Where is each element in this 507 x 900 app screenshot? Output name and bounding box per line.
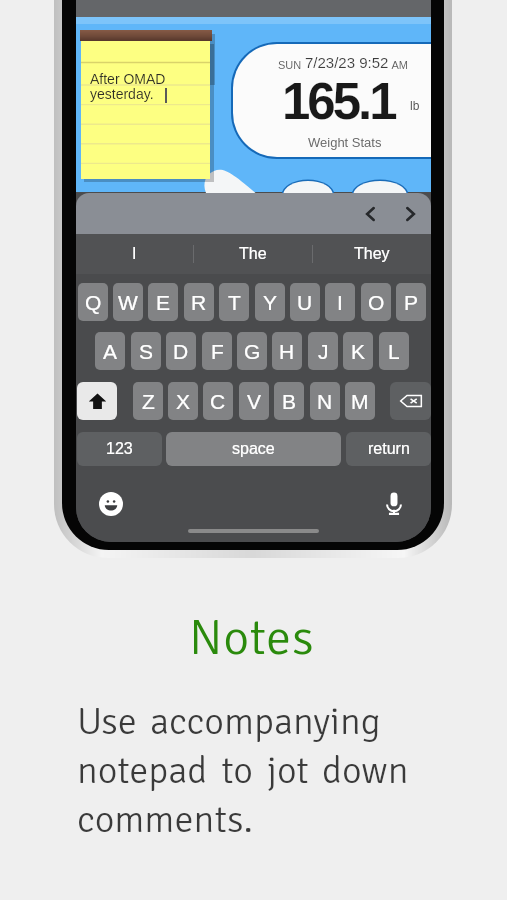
staticText: X [176,390,191,413]
button[interactable]: P [396,283,426,321]
staticText: SUN [278,59,305,71]
button[interactable]: T [219,283,249,321]
staticText: G [244,340,261,363]
button[interactable]: Backspace [390,382,431,420]
button[interactable]: H [272,332,302,370]
staticText: jot [267,747,309,794]
button[interactable]: space [166,432,341,466]
button[interactable]: Emoji keyboard [99,492,123,516]
button[interactable]: L [379,332,409,370]
staticText: M [351,390,369,413]
staticText: lb [410,99,420,112]
staticText: N [317,390,333,413]
button[interactable]: Dictation [382,491,406,515]
staticText: 123 [106,440,133,458]
staticText: P [404,291,419,314]
button[interactable]: R [184,283,214,321]
button[interactable]: Q [78,283,108,321]
staticText: comments. [77,796,253,843]
staticText: U [297,291,313,314]
staticText: C [210,390,226,413]
staticText: 7/23/23 9:52 [305,54,389,71]
staticText: Weight Stats [308,135,382,150]
staticText: After OMAD yesterday. [90,71,166,102]
button[interactable]: K [343,332,373,370]
button[interactable]: Shift [77,382,117,420]
staticText: I [132,245,137,263]
staticText: E [156,291,171,314]
staticText: F [211,340,224,363]
staticText: return [368,440,410,458]
button[interactable]: W [113,283,143,321]
button[interactable]: Y [255,283,285,321]
button[interactable]: return [346,432,431,466]
staticText: Y [263,291,278,314]
button[interactable]: Z [133,382,163,420]
staticText: K [351,340,366,363]
button[interactable]: A [95,332,125,370]
button[interactable]: G [237,332,267,370]
button[interactable]: E [148,283,178,321]
staticText: S [139,340,154,363]
button[interactable]: O [361,283,391,321]
staticText: I [337,291,343,314]
staticText: AM [389,59,408,71]
button[interactable]: Next field [398,202,422,226]
staticText: R [191,291,207,314]
staticText: O [368,291,385,314]
button[interactable]: D [166,332,196,370]
button[interactable]: F [202,332,232,370]
staticText: V [247,390,262,413]
staticText: Notes [189,607,315,669]
button[interactable]: 123 [77,432,162,466]
staticText: 165.1 [282,73,395,130]
button[interactable]: I [325,283,355,321]
staticText: to [221,747,254,794]
staticText: notepad [77,747,208,794]
button[interactable]: C [203,382,233,420]
button[interactable]: N [310,382,340,420]
button[interactable]: M [345,382,375,420]
staticText: Use [77,698,137,745]
staticText: A [103,340,118,363]
staticText: accompanying [150,698,381,745]
staticText: Z [142,390,155,413]
button[interactable]: They [313,234,431,274]
button[interactable]: J [308,332,338,370]
staticText: B [282,390,297,413]
button[interactable]: U [290,283,320,321]
button[interactable]: X [168,382,198,420]
staticText: W [118,291,138,314]
button[interactable]: The [194,234,312,274]
button[interactable]: B [274,382,304,420]
staticText: L [388,340,400,363]
staticText: Q [85,291,102,314]
button[interactable]: I [76,234,193,274]
staticText: D [173,340,189,363]
staticText: down [322,747,409,794]
button[interactable]: V [239,382,269,420]
staticText: space [232,440,275,458]
button[interactable]: Previous field [359,202,383,226]
staticText: The [239,245,267,263]
staticText: They [354,245,390,263]
staticText: J [318,340,329,363]
staticText: T [228,291,241,314]
button[interactable]: S [131,332,161,370]
staticText: H [279,340,295,363]
